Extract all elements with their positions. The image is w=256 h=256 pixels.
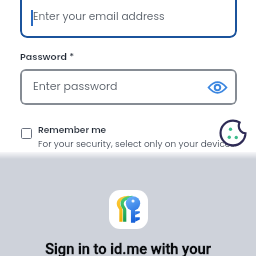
button[interactable]: Enter password (20, 69, 237, 105)
staticText: Enter your email address (33, 9, 165, 24)
staticText: Password * (20, 50, 75, 63)
staticText: For your security, select only on your d… (38, 138, 235, 150)
staticText: Sign in to id.me with your (0, 240, 256, 256)
button[interactable]: Cookie preferences (219, 119, 247, 147)
staticText: Enter password (33, 78, 118, 93)
button[interactable]: Remember me (20, 123, 235, 148)
button[interactable]: Show password (207, 77, 227, 97)
staticText: Remember me (38, 124, 107, 137)
button[interactable]: Enter your email address (20, 0, 237, 38)
